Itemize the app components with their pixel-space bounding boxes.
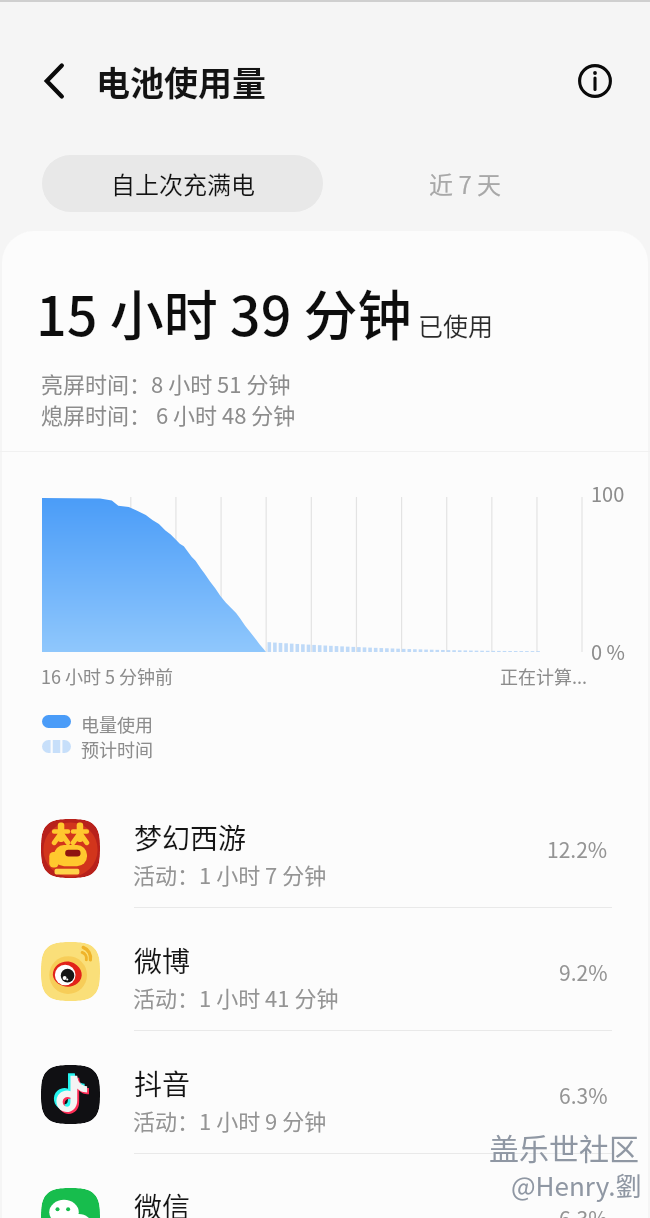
button[interactable]: Back <box>26 54 80 108</box>
staticText: 抖音 <box>134 1063 191 1104</box>
button[interactable]: 自上次充满电 <box>42 155 323 212</box>
staticText: 活动：1 小时 7 分钟 <box>133 858 327 890</box>
staticText: 微信 <box>134 1186 191 1218</box>
staticText: 正在计算... <box>500 663 588 689</box>
staticText: 15 小时 39 分钟 <box>36 273 412 351</box>
staticText: 预计时间 <box>81 736 153 762</box>
staticText: 9.2% <box>559 957 608 987</box>
staticText: 16 小时 5 分钟前 <box>41 663 174 689</box>
staticText: 活动：1 小时 9 分钟 <box>133 1104 327 1136</box>
staticText: 近 7 天 <box>429 166 502 201</box>
staticText: 0 % <box>591 637 625 666</box>
staticText: 电量使用 <box>81 711 153 737</box>
staticText: 6.3% <box>559 1080 608 1110</box>
button[interactable]: 梦幻西游 <box>0 785 650 908</box>
staticText: 活动：1 小时 41 分钟 <box>133 981 339 1013</box>
button[interactable]: Information <box>569 55 621 107</box>
button[interactable]: 近 7 天 <box>323 155 608 212</box>
staticText: 电池使用量 <box>96 57 266 106</box>
staticText: 盖乐世社区 <box>489 1125 639 1168</box>
staticText: 熄屏时间： 6 小时 48 分钟 <box>41 398 296 430</box>
staticText: 梦幻西游 <box>134 817 247 858</box>
staticText: 6.3% <box>559 1203 608 1218</box>
button[interactable]: 微博 <box>0 908 650 1031</box>
staticText: 自上次充满电 <box>111 166 255 201</box>
staticText: 微博 <box>134 940 191 981</box>
staticText: 12.2% <box>547 834 608 864</box>
staticText: 亮屏时间：8 小时 51 分钟 <box>41 367 291 399</box>
staticText: 100 <box>591 479 625 508</box>
button[interactable]: 微信 <box>0 1154 650 1218</box>
staticText: @Henry.劉 <box>511 1166 642 1204</box>
button[interactable]: 抖音 <box>0 1031 650 1154</box>
staticText: 已使用 <box>418 307 494 343</box>
